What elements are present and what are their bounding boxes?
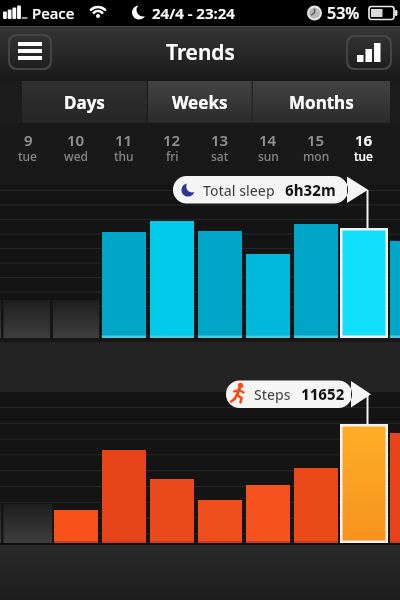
staticText: wed xyxy=(64,148,89,164)
staticText: sat xyxy=(211,148,229,164)
staticText: Weeks xyxy=(172,91,228,114)
staticText: Peace xyxy=(32,3,75,23)
staticText: fri xyxy=(166,148,179,164)
staticText: sun xyxy=(258,148,279,164)
staticText: Total sleep xyxy=(203,181,275,200)
staticText: 15 xyxy=(307,130,325,150)
button[interactable]: Weeks xyxy=(147,81,252,123)
staticText: 24/4 - 23:24 xyxy=(152,3,235,23)
staticText: Months xyxy=(289,91,354,114)
staticText: 12 xyxy=(163,130,181,150)
button[interactable]: Months xyxy=(252,81,390,123)
staticText: 14 xyxy=(259,130,277,150)
staticText: tue xyxy=(354,148,374,164)
staticText: 13 xyxy=(211,130,229,150)
button[interactable]: Days xyxy=(22,81,147,123)
button[interactable] xyxy=(10,36,50,68)
staticText: 53% xyxy=(327,2,360,24)
staticText: Days xyxy=(64,91,105,114)
staticText: 6h32m xyxy=(285,180,336,200)
staticText: 9 xyxy=(24,130,33,150)
staticText: Steps xyxy=(254,385,291,404)
staticText: 10 xyxy=(67,130,85,150)
staticText: Trends xyxy=(166,38,235,67)
staticText: 11 xyxy=(115,130,133,150)
staticText: mon xyxy=(303,148,330,164)
staticText: 11652 xyxy=(301,384,345,404)
button[interactable] xyxy=(348,37,390,68)
staticText: tue xyxy=(18,148,38,164)
staticText: thu xyxy=(114,148,134,164)
staticText: 16 xyxy=(355,130,373,150)
